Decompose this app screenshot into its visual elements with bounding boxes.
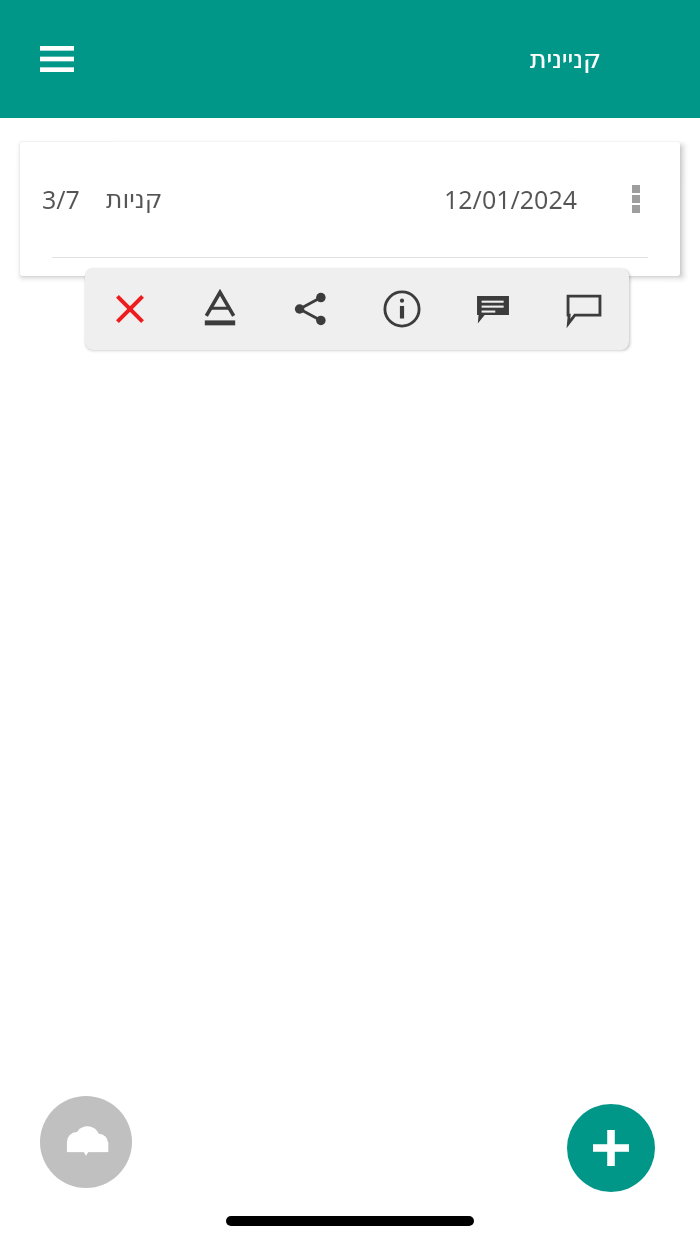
button[interactable]: Add bbox=[567, 1104, 655, 1192]
staticText: 3/7 bbox=[42, 182, 80, 216]
button[interactable]: Format color text bbox=[175, 268, 265, 350]
button[interactable]: Menu bbox=[21, 23, 93, 95]
button[interactable]: Comments bbox=[447, 268, 538, 350]
button[interactable]: Info bbox=[356, 268, 447, 350]
button[interactable]: Chat bbox=[538, 268, 629, 350]
button[interactable]: Delete bbox=[85, 268, 175, 350]
staticText: 12/01/2024 bbox=[444, 182, 578, 216]
button[interactable]: More options bbox=[614, 177, 658, 221]
staticText: קניינית bbox=[530, 45, 601, 74]
button[interactable]: Share bbox=[265, 268, 356, 350]
staticText: קניות bbox=[106, 185, 163, 214]
button[interactable]: Download bbox=[40, 1096, 132, 1188]
button[interactable]: 3/7 bbox=[20, 142, 680, 276]
